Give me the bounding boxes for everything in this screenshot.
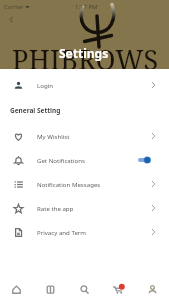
staticText: General Setting	[10, 106, 61, 115]
staticText: Carrier	[4, 3, 24, 11]
button[interactable]: My Wishlist	[0, 124, 169, 148]
button[interactable]: Home	[0, 279, 33, 300]
button[interactable]: Get Notifications	[0, 148, 169, 172]
staticText: My Wishlist	[37, 132, 70, 140]
button[interactable]: Rate the app	[0, 196, 169, 220]
button[interactable]: Notification Messages	[0, 172, 169, 196]
staticText: Login	[37, 81, 53, 89]
button[interactable]: Search	[67, 279, 101, 300]
staticText: PHIBROWS	[12, 41, 159, 69]
staticText: Notification Messages	[37, 180, 101, 188]
button[interactable]: Back	[6, 14, 17, 25]
button[interactable]: Account	[135, 279, 169, 300]
button[interactable]: Login	[0, 73, 169, 97]
staticText: Get Notifications	[37, 156, 85, 164]
button[interactable]: Privacy and Term	[0, 220, 169, 244]
button[interactable]: Catalog	[33, 279, 67, 300]
staticText: Settings	[59, 45, 109, 61]
button[interactable]: Cart	[101, 279, 135, 300]
staticText: 1:17 PM	[75, 3, 98, 11]
staticText: Privacy and Term	[37, 228, 87, 236]
staticText: Rate the app	[37, 204, 74, 212]
